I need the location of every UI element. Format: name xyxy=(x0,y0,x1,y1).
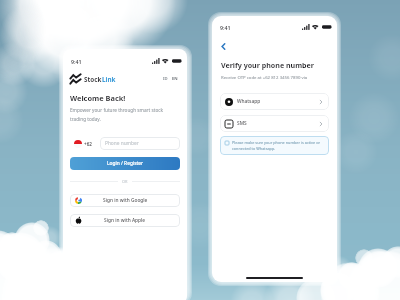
staticText: Login / Register xyxy=(107,160,144,167)
button[interactable]: ID xyxy=(161,74,180,84)
staticText: OR xyxy=(122,179,128,184)
staticText: ID xyxy=(163,76,168,82)
staticText: Whatsapp xyxy=(237,98,261,105)
staticText: Link xyxy=(102,75,116,84)
button[interactable]: Sign in with Apple xyxy=(70,214,180,227)
staticText: +62 xyxy=(84,141,92,147)
button[interactable]: Back xyxy=(216,39,230,53)
button[interactable]: +62 xyxy=(70,138,96,150)
staticText: Sign in with Google xyxy=(103,197,148,204)
staticText: Please make sure your phone number is ac… xyxy=(232,140,324,151)
staticText: Welcome Back! xyxy=(70,93,126,103)
staticText: SMS xyxy=(237,120,247,127)
staticText: Sign in with Apple xyxy=(104,217,146,224)
button[interactable]: Whatsapp xyxy=(220,93,329,110)
staticText: Verify your phone number xyxy=(221,60,314,70)
button[interactable]: SMS xyxy=(220,115,329,132)
button[interactable]: Sign in with Google xyxy=(70,194,180,207)
button[interactable]: Login / Register xyxy=(70,157,180,170)
staticText: EN xyxy=(172,76,178,82)
staticText: Phone number xyxy=(105,140,139,147)
staticText: 9:41 xyxy=(220,24,231,31)
staticText: 9:41 xyxy=(71,58,82,65)
button[interactable]: Phone number xyxy=(100,137,180,150)
staticText: Receive OTP code at +62 812 3456 7890 vi… xyxy=(221,74,308,80)
staticText: Stock xyxy=(84,75,102,84)
staticText: Empower your future through smart stock … xyxy=(70,107,180,122)
